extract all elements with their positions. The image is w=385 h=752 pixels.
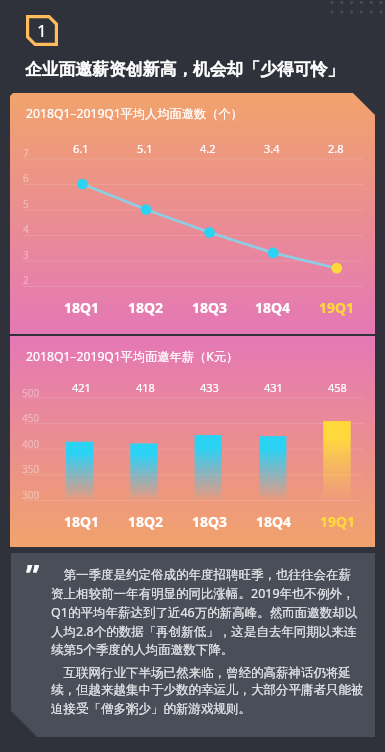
staticText: 19Q1 [319, 298, 355, 317]
staticText: 433 [200, 380, 219, 395]
button[interactable]: Section 1 [26, 15, 58, 46]
staticText: 431 [264, 380, 283, 395]
staticText: 19Q1 [320, 512, 356, 531]
staticText: 第一季度是约定俗成的年度招聘旺季，也往往会在薪 [51, 566, 351, 583]
staticText: 18Q4 [256, 512, 292, 531]
staticText: ” [26, 555, 40, 596]
staticText: 458 [328, 380, 347, 395]
staticText: 互联网行业下半场已然来临，曾经的高薪神话仍将延 [51, 664, 351, 681]
staticText: 7 [23, 146, 29, 160]
staticText: 2.8 [328, 141, 344, 156]
staticText: 续第5个季度的人均面邀数下降。 [51, 641, 234, 658]
staticText: 企业面邀薪资创新高，机会却「少得可怜」 [25, 59, 345, 80]
staticText: 418 [136, 380, 155, 395]
staticText: 3.4 [264, 141, 280, 156]
staticText: 5 [23, 197, 29, 211]
staticText: 续，但越来越集中于少数的幸运儿，大部分平庸者只能被 [51, 682, 364, 698]
staticText: Q1的平均年薪达到了近46万的新高峰。然而面邀数却以 [51, 604, 358, 621]
staticText: 3 [23, 248, 29, 262]
staticText: 资上相较前一年有明显的同比涨幅。2019年也不例外， [51, 585, 355, 602]
staticText: 18Q4 [255, 298, 291, 317]
staticText: 5.1 [137, 141, 153, 156]
staticText: 2 [23, 273, 29, 287]
staticText: 6 [23, 171, 29, 185]
staticText: 421 [72, 380, 91, 395]
staticText: 1 [37, 19, 47, 42]
staticText: 18Q1 [64, 298, 100, 317]
staticText: 18Q1 [64, 512, 100, 531]
staticText: 18Q3 [192, 512, 228, 531]
staticText: 人均2.8个的数据「再创新低」，这是自去年同期以来连 [51, 623, 357, 640]
staticText: 4 [23, 222, 29, 236]
staticText: 18Q2 [128, 512, 164, 531]
staticText: 300 [22, 488, 40, 502]
staticText: 6.1 [73, 141, 89, 156]
staticText: 400 [22, 437, 40, 451]
staticText: 18Q2 [128, 298, 164, 317]
staticText: 2018Q1–2019Q1平均人均面邀数（个） [26, 105, 243, 122]
staticText: 4.2 [200, 141, 216, 156]
staticText: 450 [22, 411, 40, 425]
staticText: 350 [22, 462, 40, 476]
staticText: 2018Q1–2019Q1平均面邀年薪（K元） [26, 348, 239, 365]
staticText: 18Q3 [192, 298, 228, 317]
staticText: 500 [22, 386, 40, 400]
staticText: 迫接受「僧多粥少」的新游戏规则。 [51, 701, 251, 717]
